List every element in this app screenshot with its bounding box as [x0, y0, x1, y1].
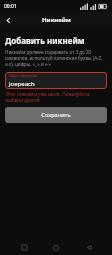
button[interactable]: Недавние: [15, 240, 33, 255]
staticText: Этот никнейм уже занят. Пожалуйста, выбе…: [6, 91, 107, 103]
button[interactable]: Назад: [0, 12, 16, 28]
staticText: 00:01: [4, 3, 17, 10]
button[interactable]: Сохранить: [5, 107, 107, 123]
button[interactable]: Назад: [80, 240, 98, 255]
button[interactable]: Ваш никнейм: [5, 72, 107, 89]
staticText: joepeach: [9, 80, 35, 88]
staticText: Никнейм должен содержать от 3 до 20 симв…: [5, 49, 107, 67]
staticText: Добавить никнейм: [5, 35, 85, 46]
staticText: Ваш никнейм: [9, 73, 37, 79]
staticText: Сохранить: [41, 111, 71, 119]
staticText: Никнейм: [42, 16, 71, 24]
button[interactable]: Домой: [47, 240, 65, 255]
